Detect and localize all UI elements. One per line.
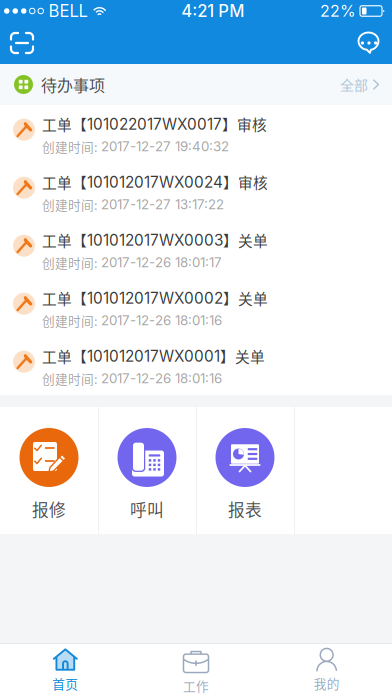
button[interactable]: 待办事项	[0, 64, 392, 105]
button[interactable]: 工单【101022017WX0017】审核	[0, 105, 392, 163]
button[interactable]: 报表	[196, 407, 294, 534]
staticText: 报修	[32, 497, 66, 521]
staticText: 报表	[228, 497, 262, 521]
button[interactable]: 工单【101012017WX0003】关单	[0, 221, 392, 279]
button[interactable]: 我的	[261, 644, 392, 696]
staticText: 工单【101012017WX0003】关单	[42, 230, 268, 250]
button[interactable]: 工作	[131, 644, 261, 696]
staticText: 全部	[340, 74, 368, 95]
staticText: 工单【101012017WX0001】关单	[42, 346, 265, 366]
button[interactable]: 呼叫	[98, 407, 196, 534]
staticText: 创建时间: 2017-12-26 18:01:17	[42, 253, 222, 271]
button[interactable]: 工单【101012017WX0024】审核	[0, 163, 392, 221]
staticText: 首页	[52, 674, 78, 693]
staticText: 呼叫	[130, 497, 164, 521]
staticText: 创建时间: 2017-12-26 18:01:16	[42, 311, 222, 329]
staticText: 工单【101022017WX0017】审核	[42, 114, 267, 134]
staticText: 创建时间: 2017-12-26 18:01:16	[42, 369, 222, 387]
staticText: 我的	[314, 674, 340, 692]
staticText: 创建时间: 2017-12-27 19:40:32	[42, 137, 229, 155]
staticText: 工单【101012017WX0002】关单	[42, 288, 268, 308]
button[interactable]: 工单【101012017WX0002】关单	[0, 279, 392, 337]
button[interactable]: Messages	[346, 22, 392, 64]
button[interactable]: Scan code	[0, 22, 44, 64]
staticText: 22%	[320, 1, 356, 21]
staticText: 工单【101012017WX0024】审核	[42, 172, 268, 192]
staticText: 4:21 PM	[181, 1, 244, 21]
staticText: BELL	[48, 1, 87, 21]
staticText: 工作	[183, 676, 209, 695]
button[interactable]: 工单【101012017WX0001】关单	[0, 337, 392, 395]
staticText: 创建时间: 2017-12-27 13:17:22	[42, 195, 224, 213]
button[interactable]: 报修	[0, 407, 98, 534]
button[interactable]: 首页	[0, 644, 131, 696]
staticText: 待办事项	[41, 73, 105, 96]
